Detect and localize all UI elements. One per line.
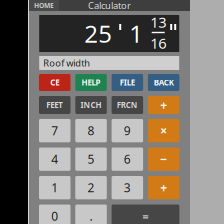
button[interactable]: 6 bbox=[112, 147, 143, 171]
staticText: HOME bbox=[34, 1, 54, 10]
button[interactable]: Roof width bbox=[39, 56, 179, 70]
staticText: Roof width bbox=[43, 57, 90, 69]
button[interactable]: HOME bbox=[29, 0, 59, 11]
staticText: 1 bbox=[129, 18, 143, 49]
staticText: 25 bbox=[84, 18, 112, 49]
button[interactable]: 9 bbox=[112, 119, 143, 142]
staticText: 1 bbox=[51, 180, 58, 196]
staticText: FILE bbox=[120, 77, 135, 88]
staticText: = bbox=[142, 209, 148, 223]
staticText: 13 bbox=[150, 12, 166, 32]
staticText: + bbox=[160, 180, 167, 196]
staticText: 8 bbox=[88, 123, 95, 139]
button[interactable]: CE bbox=[39, 74, 70, 91]
button[interactable]: 3 bbox=[112, 176, 143, 199]
staticText: 3 bbox=[124, 180, 131, 196]
button[interactable]: FRCN bbox=[112, 96, 143, 114]
button[interactable]: + bbox=[148, 176, 179, 199]
button[interactable]: INCH bbox=[75, 96, 107, 114]
button[interactable]: × bbox=[148, 119, 179, 142]
button[interactable]: + bbox=[148, 96, 179, 114]
button[interactable]: 4 bbox=[39, 147, 70, 171]
button[interactable]: 0 bbox=[39, 204, 70, 224]
staticText: HELP bbox=[82, 77, 101, 88]
staticText: 0 bbox=[51, 208, 58, 224]
button[interactable]: FILE bbox=[112, 74, 143, 91]
button[interactable]: 8 bbox=[75, 119, 107, 142]
staticText: 7 bbox=[51, 123, 58, 139]
staticText: Calculator bbox=[88, 0, 131, 12]
staticText: 9 bbox=[124, 123, 131, 139]
staticText: × bbox=[160, 123, 167, 139]
button[interactable]: 7 bbox=[39, 119, 70, 142]
staticText: INCH bbox=[81, 100, 102, 110]
button[interactable]: . bbox=[75, 204, 107, 224]
staticText: BACK bbox=[154, 77, 174, 88]
staticText: 6 bbox=[124, 151, 131, 167]
staticText: . bbox=[89, 208, 92, 224]
button[interactable]: BACK bbox=[148, 74, 179, 91]
button[interactable]: FEET bbox=[39, 96, 70, 114]
staticText: FRCN bbox=[117, 100, 138, 110]
staticText: CE bbox=[50, 77, 59, 88]
button[interactable]: 2 bbox=[75, 176, 107, 199]
staticText: − bbox=[160, 151, 167, 167]
staticText: + bbox=[160, 97, 167, 113]
staticText: FEET bbox=[46, 100, 63, 110]
button[interactable]: = bbox=[112, 204, 179, 224]
button[interactable]: 5 bbox=[75, 147, 107, 171]
button[interactable]: − bbox=[148, 147, 179, 171]
button[interactable]: HELP bbox=[75, 74, 107, 91]
staticText: 2 bbox=[88, 180, 95, 196]
staticText: 4 bbox=[51, 151, 58, 167]
staticText: 5 bbox=[88, 151, 95, 167]
button[interactable]: 1 bbox=[39, 176, 70, 199]
staticText: 16 bbox=[150, 33, 166, 53]
